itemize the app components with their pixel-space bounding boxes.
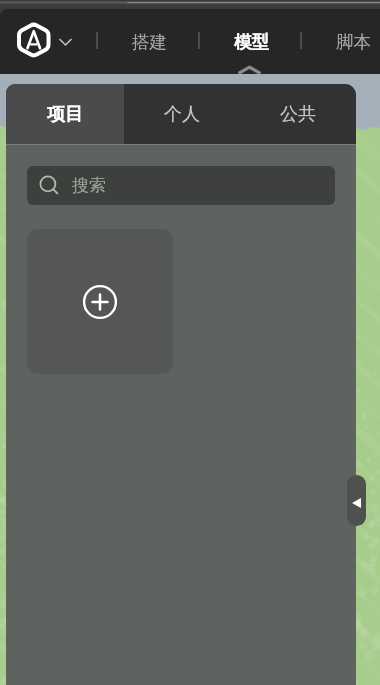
staticText: 搜索: [72, 175, 106, 196]
button[interactable]: 模型: [221, 29, 281, 55]
button[interactable]: 个人: [124, 84, 240, 144]
staticText: 脚本: [336, 31, 371, 53]
staticText: 项目: [47, 103, 83, 126]
staticText: 个人: [164, 103, 200, 126]
button[interactable]: 新建项目: [27, 229, 173, 374]
button[interactable]: 公共: [240, 84, 356, 144]
button[interactable]: 项目: [6, 84, 124, 144]
button[interactable]: 切换项目: [56, 32, 75, 50]
staticText: 模型: [234, 31, 269, 53]
button[interactable]: 应用主页: [16, 21, 54, 59]
button[interactable]: 收起面板: [347, 475, 366, 526]
staticText: 公共: [280, 103, 316, 126]
button[interactable]: 脚本: [323, 29, 380, 55]
button[interactable]: 搭建: [119, 29, 179, 55]
button[interactable]: 搜索: [27, 166, 335, 205]
staticText: 搭建: [132, 31, 167, 53]
